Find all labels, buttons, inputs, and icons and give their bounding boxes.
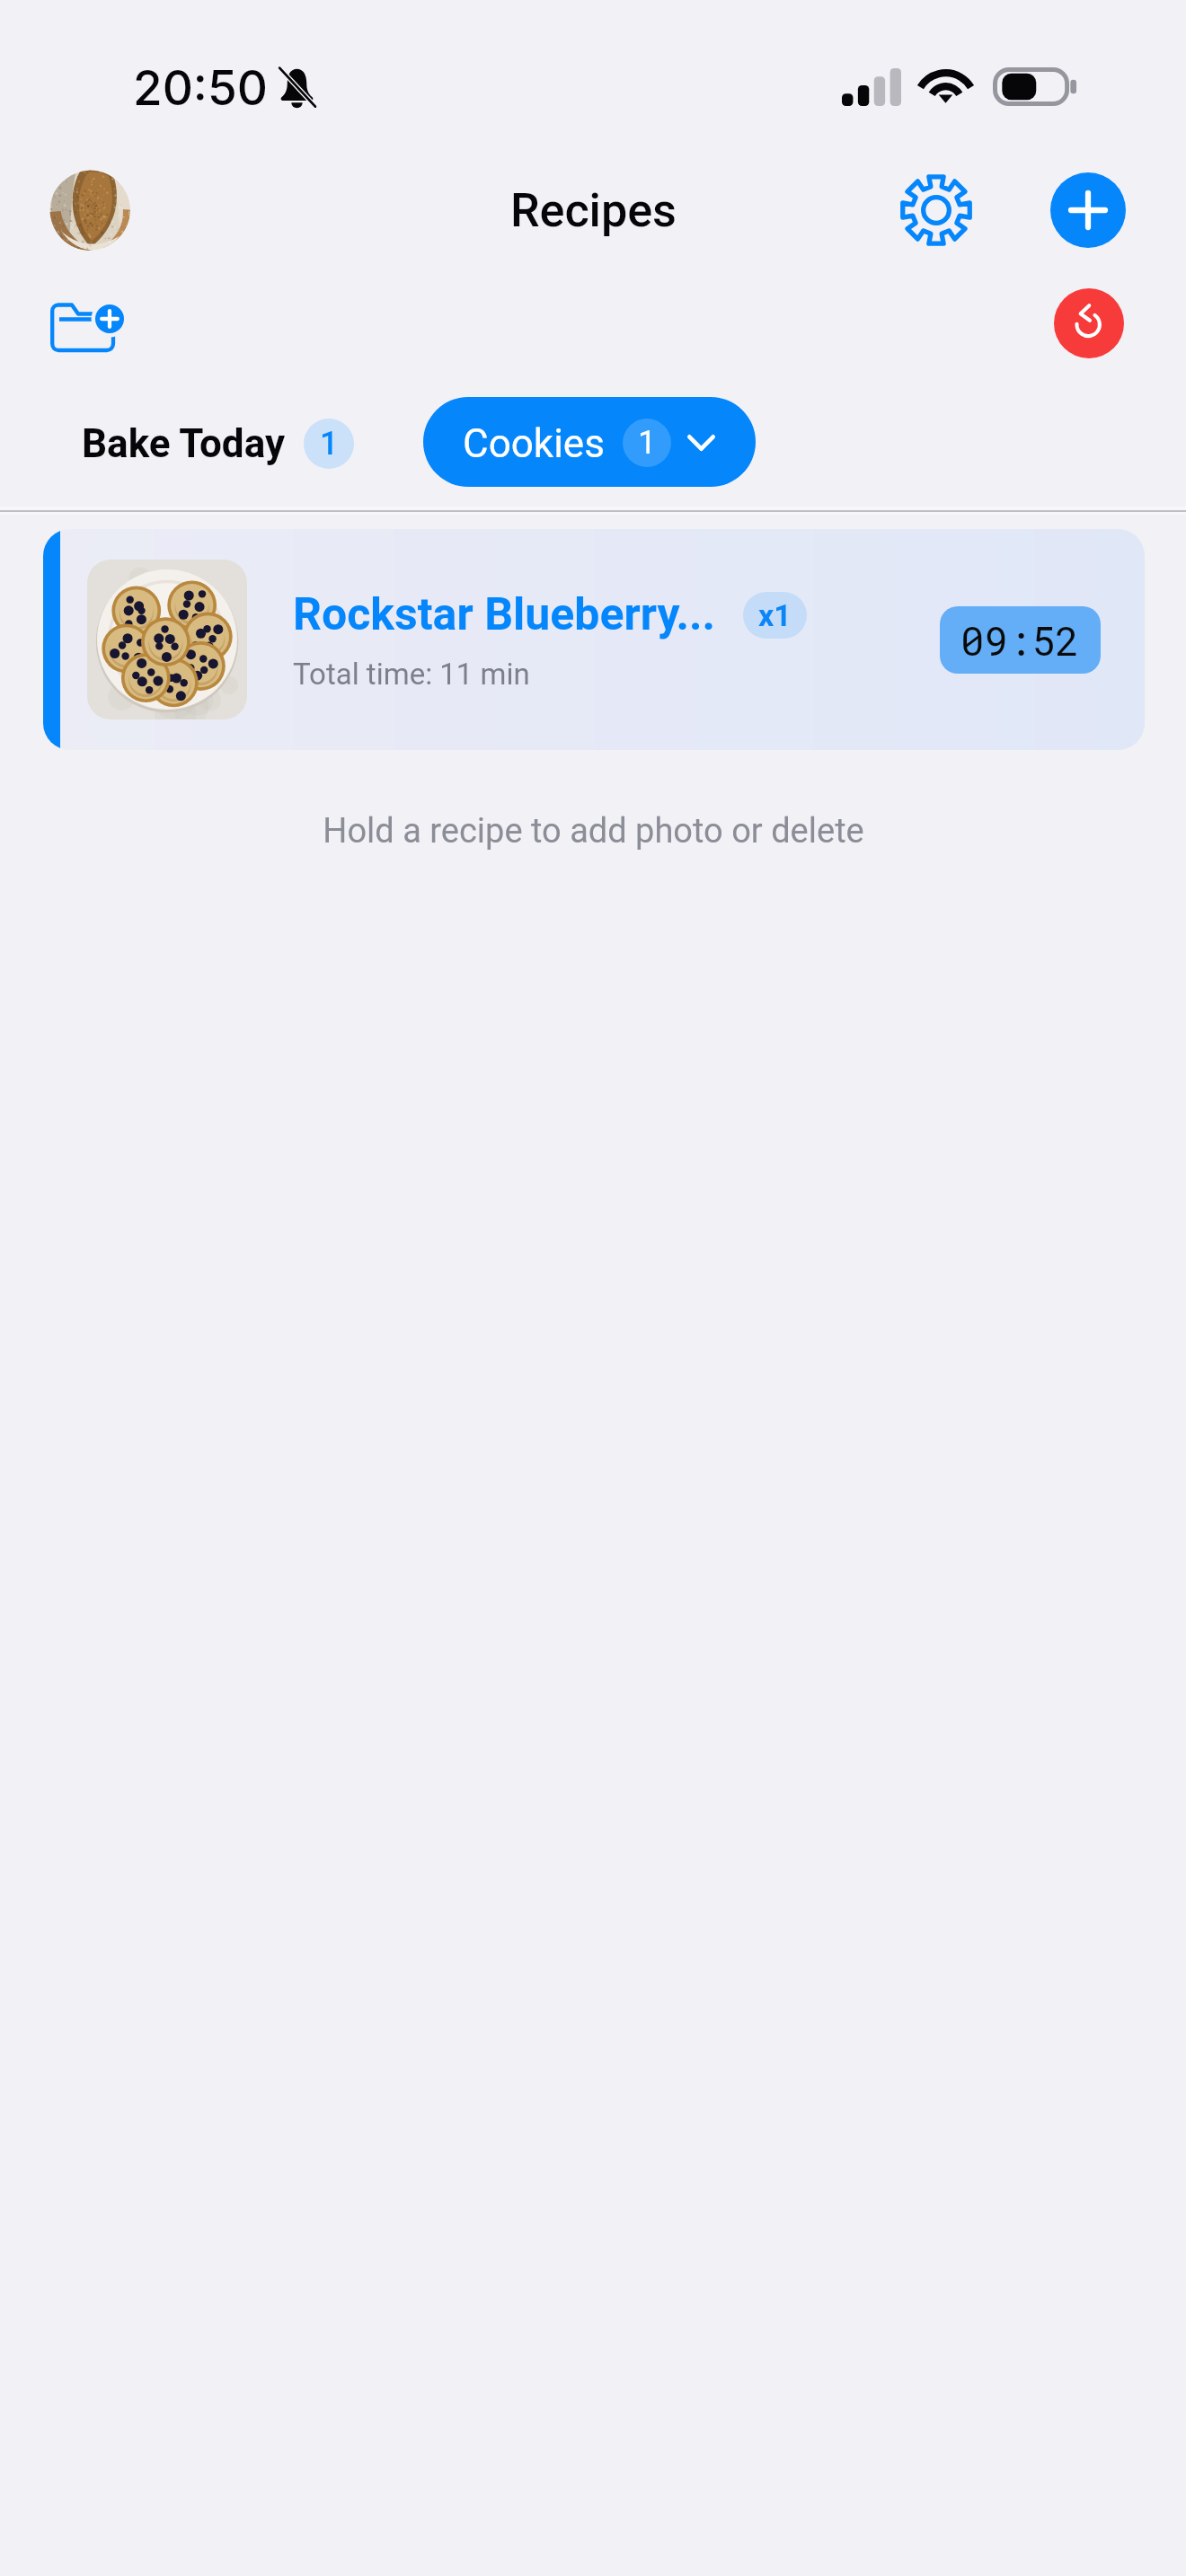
- button[interactable]: Rockstar Blueberry...: [43, 529, 1145, 750]
- staticText: 1: [320, 425, 339, 463]
- button[interactable]: Reset all timers: [1054, 288, 1124, 358]
- staticText: 1: [638, 424, 657, 462]
- button[interactable]: Settings: [884, 158, 988, 262]
- staticText: 20:50: [133, 59, 268, 117]
- button[interactable]: Cookies: [423, 397, 756, 487]
- staticText: 09:52: [960, 614, 1080, 666]
- staticText: x1: [758, 597, 792, 633]
- button[interactable]: Bake Today: [66, 406, 370, 481]
- staticText: Total time: 11 min: [293, 657, 530, 692]
- staticText: Cookies: [463, 420, 605, 467]
- button[interactable]: Add recipe: [1050, 172, 1126, 248]
- staticText: Rockstar Blueberry...: [293, 588, 716, 641]
- button[interactable]: App logo: [49, 170, 130, 251]
- button[interactable]: New folder: [36, 287, 139, 366]
- staticText: Recipes: [510, 183, 677, 238]
- staticText: Hold a recipe to add photo or delete: [323, 811, 864, 851]
- button[interactable]: 09:52: [940, 606, 1101, 674]
- staticText: Bake Today: [82, 420, 286, 467]
